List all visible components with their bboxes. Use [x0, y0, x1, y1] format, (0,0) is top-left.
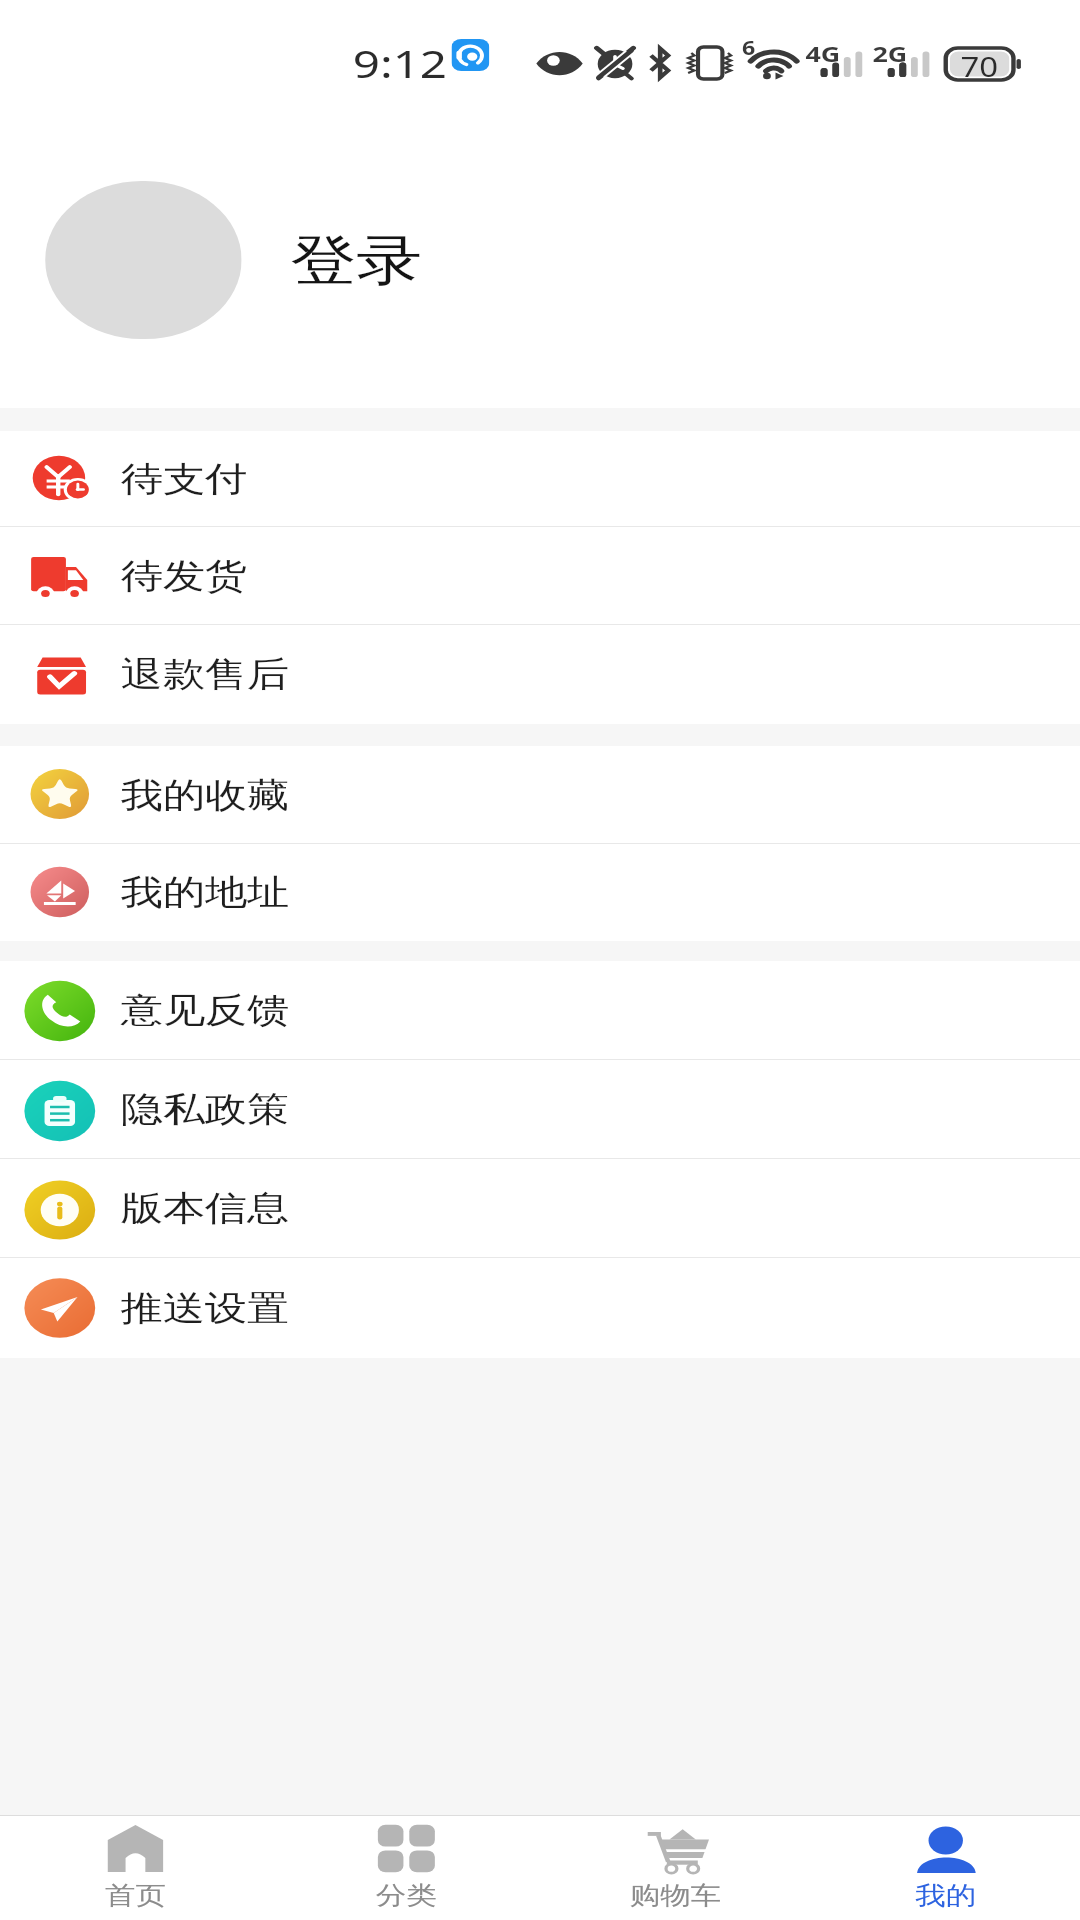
staticText: 待发货: [121, 555, 248, 598]
staticText: 推送设置: [121, 1287, 289, 1330]
staticText: 分类: [376, 1880, 437, 1911]
staticText: 我的地址: [121, 871, 289, 914]
staticText: 隐私政策: [121, 1088, 289, 1131]
button[interactable]: 登录: [0, 100, 1080, 408]
button[interactable]: 我的收藏: [0, 746, 1080, 844]
button[interactable]: 推送设置: [0, 1258, 1080, 1358]
button[interactable]: 版本信息: [0, 1159, 1080, 1258]
staticText: 版本信息: [121, 1187, 289, 1230]
staticText: 我的: [915, 1880, 976, 1911]
button[interactable]: 隐私政策: [0, 1060, 1080, 1159]
button[interactable]: 购物车: [541, 1816, 810, 1920]
staticText: 退款售后: [121, 653, 289, 696]
staticText: 4G: [805, 38, 841, 68]
button[interactable]: 首页: [0, 1816, 271, 1920]
staticText: 意见反馈: [121, 989, 289, 1032]
staticText: 登录: [290, 227, 422, 295]
staticText: 6: [742, 35, 755, 61]
button[interactable]: 我的地址: [0, 844, 1080, 941]
button[interactable]: 待发货: [0, 527, 1080, 625]
staticText: 70: [960, 48, 998, 85]
button[interactable]: 意见反馈: [0, 961, 1080, 1060]
button[interactable]: 待支付: [0, 431, 1080, 527]
staticText: 购物车: [630, 1880, 721, 1911]
button[interactable]: 退款售后: [0, 625, 1080, 724]
button[interactable]: 分类: [271, 1816, 541, 1920]
staticText: 我的收藏: [121, 774, 289, 817]
staticText: 2G: [872, 38, 908, 68]
button[interactable]: 我的: [810, 1816, 1080, 1920]
staticText: 待支付: [121, 458, 248, 501]
staticText: 9:12: [353, 36, 448, 89]
staticText: 首页: [105, 1880, 166, 1911]
